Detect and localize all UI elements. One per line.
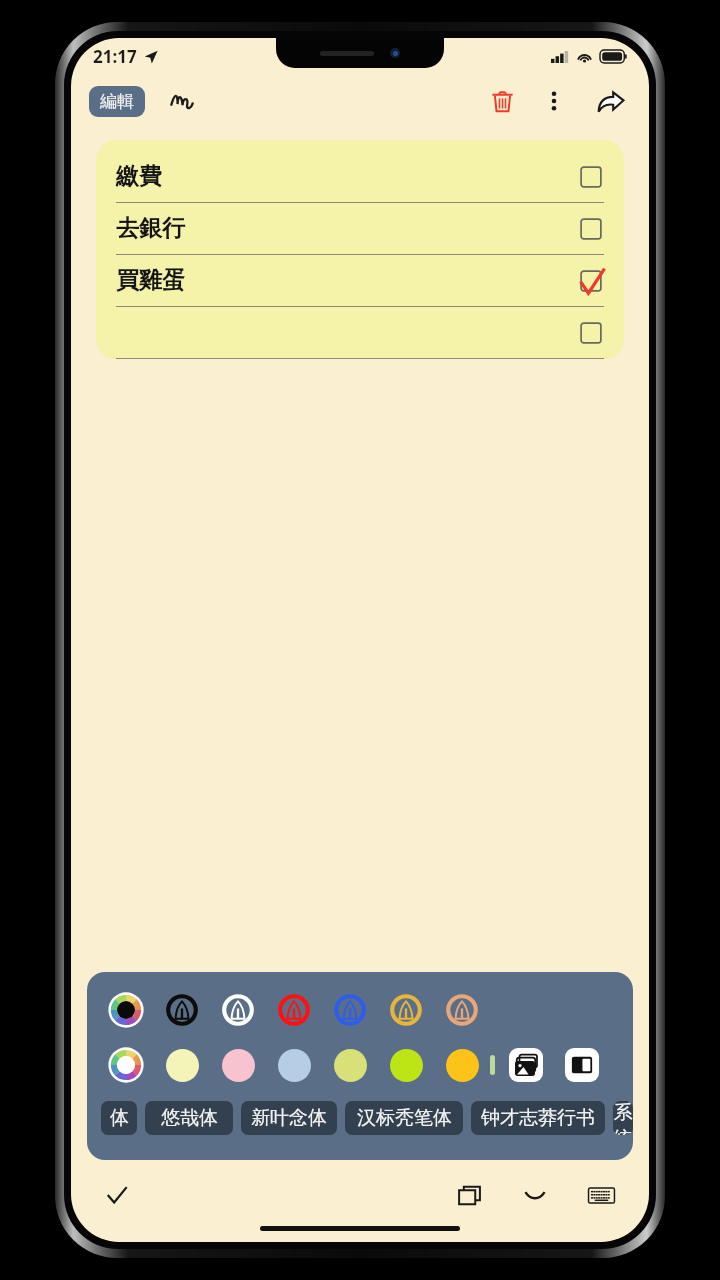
button[interactable]: Keyboard: [579, 1174, 623, 1216]
button[interactable]: Pen: [220, 992, 256, 1028]
button[interactable]: 編輯: [89, 86, 145, 117]
staticText: 新叶念体: [251, 1106, 327, 1130]
button[interactable]: Pen: [164, 992, 200, 1028]
staticText: 系统: [613, 1101, 633, 1135]
staticText: 去銀行: [116, 214, 185, 243]
button[interactable]: Background color picker: [108, 1047, 144, 1083]
button[interactable]: Color: [164, 1047, 200, 1083]
button[interactable]: Color: [220, 1047, 256, 1083]
button[interactable]: 钟才志莽行书: [471, 1101, 605, 1135]
button[interactable]: 汉标秃笔体: [345, 1101, 463, 1135]
button[interactable]: Draw: [163, 82, 201, 120]
button[interactable]: Notes: [447, 1174, 491, 1216]
staticText: 繳費: [116, 162, 162, 191]
button[interactable]: 体: [101, 1101, 137, 1135]
staticText: 買雞蛋: [116, 266, 185, 295]
button[interactable]: 新叶念体: [241, 1101, 337, 1135]
button[interactable]: Pen: [276, 992, 312, 1028]
staticText: 編輯: [100, 91, 134, 112]
button[interactable]: 繳費: [96, 140, 624, 359]
staticText: 钟才志莽行书: [481, 1106, 595, 1130]
button[interactable]: More options: [533, 80, 575, 122]
button[interactable]: Pen: [388, 992, 424, 1028]
staticText: 悠哉体: [161, 1106, 218, 1130]
button[interactable]: Photos: [507, 1046, 545, 1084]
staticText: 汉标秃笔体: [357, 1106, 452, 1130]
button[interactable]: Color: [276, 1047, 312, 1083]
button[interactable]: Color: [388, 1047, 424, 1083]
staticText: 21:17: [93, 45, 137, 68]
button[interactable]: Color: [444, 1047, 480, 1083]
button[interactable]: Pen color picker: [108, 992, 144, 1028]
button[interactable]: Share: [589, 80, 631, 122]
button[interactable]: Color: [332, 1047, 368, 1083]
button[interactable]: Delete: [481, 80, 523, 122]
button[interactable]: Collapse: [513, 1174, 557, 1216]
button[interactable]: Split view: [563, 1046, 601, 1084]
button[interactable]: 系统: [613, 1101, 633, 1135]
button[interactable]: 悠哉体: [145, 1101, 233, 1135]
button[interactable]: Pen: [444, 992, 480, 1028]
button[interactable]: Pen: [332, 992, 368, 1028]
button[interactable]: Done: [97, 1175, 137, 1215]
staticText: 体: [110, 1106, 129, 1130]
